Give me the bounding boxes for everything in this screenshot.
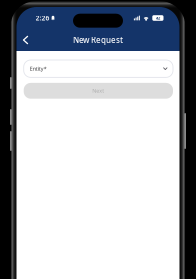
button[interactable]: Entity* <box>24 60 173 77</box>
staticText: 2:26 <box>35 14 49 22</box>
staticText: Next <box>92 87 104 94</box>
button[interactable]: Back <box>16 31 35 49</box>
staticText: Entity* <box>30 65 47 72</box>
staticText: 42 <box>156 15 160 21</box>
button[interactable]: Next <box>24 83 173 99</box>
staticText: New Request <box>73 35 123 45</box>
